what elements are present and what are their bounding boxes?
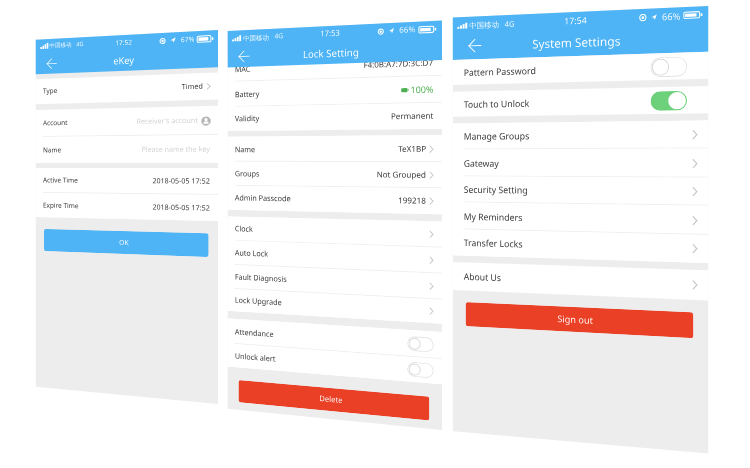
staticText: 4G (76, 40, 84, 48)
staticText: Delete (319, 393, 343, 406)
button[interactable]: Battery (228, 76, 442, 107)
staticText: Gateway (464, 157, 499, 170)
button[interactable]: Fault Diagnosis (228, 265, 442, 300)
staticText: Transfer Locks (464, 236, 523, 250)
button[interactable]: Back (47, 55, 61, 71)
staticText: Not Grouped (377, 169, 426, 181)
staticText: Touch to Unlock (464, 97, 529, 111)
staticText: Account (43, 118, 68, 128)
staticText: F4:0B:A7:7D:3C:D7 (364, 57, 433, 71)
button[interactable]: Switch off (651, 57, 687, 77)
button[interactable]: Name (36, 135, 218, 163)
staticText: Battery (235, 89, 260, 100)
button[interactable]: Validity (228, 103, 442, 131)
staticText: Groups (235, 169, 260, 179)
button[interactable]: Back (238, 47, 254, 64)
staticText: Clock (235, 223, 253, 235)
staticText: MAC (235, 64, 250, 75)
staticText: Timed (182, 81, 203, 92)
staticText: Validity (235, 113, 260, 124)
staticText: 2018-05-05 17:52 (153, 202, 211, 214)
button[interactable]: Gateway (453, 149, 708, 178)
button[interactable]: Switch on (651, 91, 687, 111)
staticText: 中国移动 (49, 41, 72, 50)
staticText: 中国移动 (243, 33, 269, 43)
button[interactable]: Back (468, 35, 487, 56)
button[interactable]: Clock (228, 217, 442, 248)
button[interactable]: About Us (453, 262, 708, 301)
staticText: Name (235, 144, 255, 155)
staticText: Fault Diagnosis (235, 272, 287, 285)
staticText: OK (119, 238, 129, 248)
staticText: 4G (274, 31, 284, 41)
staticText: Receiver's account (137, 115, 198, 127)
staticText: 100% (410, 83, 433, 96)
button[interactable]: Switch off (407, 336, 433, 352)
button[interactable]: Manage Groups (453, 120, 708, 149)
staticText: 199218 (398, 195, 426, 207)
button[interactable]: Type (36, 73, 218, 104)
staticText: Manage Groups (464, 129, 529, 143)
button[interactable]: Expire Time (36, 193, 218, 221)
staticText: Lock Setting (303, 45, 360, 61)
staticText: 4G (505, 18, 515, 29)
staticText: Expire Time (43, 201, 79, 211)
staticText: 66% (662, 9, 681, 22)
button[interactable]: Sign out (466, 302, 693, 338)
staticText: 17:52 (115, 37, 133, 47)
staticText: Admin Passcode (235, 193, 291, 204)
button[interactable]: Active Time (36, 168, 218, 195)
staticText: 2018-05-05 17:52 (153, 176, 211, 187)
staticText: eKey (113, 53, 135, 67)
staticText: Auto Lock (235, 248, 269, 260)
staticText: System Settings (532, 32, 621, 51)
button[interactable]: MAC (228, 49, 442, 82)
staticText: Security Setting (464, 183, 528, 196)
staticText: Name (43, 145, 61, 155)
staticText: Attendance (235, 327, 274, 340)
button[interactable]: Lock Upgrade (228, 289, 442, 324)
staticText: Please name the key (142, 144, 211, 155)
staticText: Lock Upgrade (235, 295, 282, 308)
button[interactable]: Pattern Password (453, 52, 708, 85)
button[interactable]: Attendance (228, 318, 442, 359)
staticText: About Us (464, 270, 502, 284)
staticText: 中国移动 (469, 19, 499, 30)
button[interactable]: Account (36, 106, 218, 137)
button[interactable]: Admin Passcode (228, 186, 442, 214)
button[interactable]: Delete (238, 380, 429, 420)
staticText: Type (43, 86, 58, 96)
button[interactable]: Name (228, 135, 442, 162)
staticText: 67% (181, 34, 195, 44)
staticText: 17:53 (320, 27, 341, 39)
staticText: Pattern Password (464, 64, 536, 79)
button[interactable]: Auto Lock (228, 241, 442, 274)
staticText: 17:54 (564, 13, 587, 26)
button[interactable]: Switch off (407, 362, 433, 378)
button[interactable]: Security Setting (453, 176, 708, 206)
button[interactable]: Groups (228, 162, 442, 188)
staticText: My Reminders (464, 210, 523, 224)
button[interactable]: Touch to Unlock (453, 86, 708, 117)
button[interactable]: My Reminders (453, 202, 708, 235)
staticText: Unlock alert (235, 351, 275, 365)
staticText: Permanent (391, 110, 434, 122)
staticText: 66% (399, 24, 416, 36)
staticText: Sign out (557, 312, 594, 327)
staticText: TeX1BP (398, 143, 426, 155)
button[interactable]: Unlock alert (228, 343, 442, 384)
staticText: Active Time (43, 176, 78, 186)
button[interactable]: OK (44, 229, 209, 257)
button[interactable]: Transfer Locks (453, 229, 708, 263)
